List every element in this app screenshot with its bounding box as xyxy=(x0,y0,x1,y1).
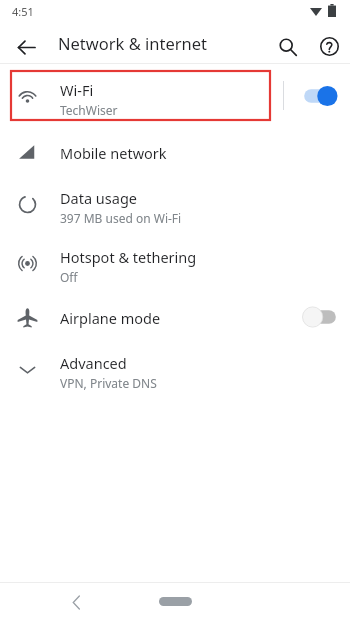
staticText: VPN, Private DNS xyxy=(60,375,157,391)
button[interactable]: Data usage xyxy=(0,180,350,228)
button[interactable]: Wi-Fi xyxy=(11,71,270,120)
staticText: Hotspot & tethering xyxy=(60,247,197,267)
button[interactable]: Back xyxy=(9,30,43,64)
staticText: Advanced xyxy=(60,353,127,373)
staticText: Off xyxy=(60,269,78,285)
staticText: Network & internet xyxy=(58,32,208,54)
staticText: Wi-Fi xyxy=(60,80,94,100)
staticText: TechWiser xyxy=(60,102,118,118)
button[interactable]: Wi-Fi toggle xyxy=(296,79,344,112)
button[interactable]: Advanced xyxy=(0,345,350,393)
button[interactable]: Airplane mode toggle xyxy=(296,300,344,333)
button[interactable]: Help xyxy=(313,30,346,63)
staticText: Airplane mode xyxy=(60,308,161,328)
staticText: 397 MB used on Wi-Fi xyxy=(60,210,182,226)
button[interactable]: Search xyxy=(271,30,304,63)
staticText: 4:51 xyxy=(12,4,34,19)
button[interactable]: Airplane mode xyxy=(0,293,350,341)
staticText: Mobile network xyxy=(60,143,167,163)
staticText: Data usage xyxy=(60,188,137,208)
button[interactable]: Home xyxy=(159,597,192,606)
button[interactable]: Back xyxy=(60,586,93,619)
button[interactable]: Hotspot & tethering xyxy=(0,239,350,287)
button[interactable]: Mobile network xyxy=(0,128,350,176)
